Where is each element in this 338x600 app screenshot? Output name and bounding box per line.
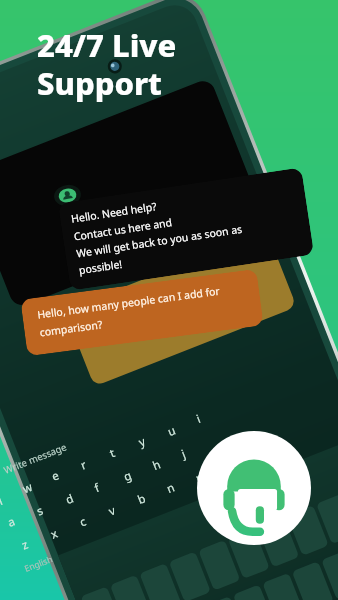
button[interactable]: c bbox=[77, 513, 89, 531]
staticText: y bbox=[136, 433, 148, 451]
button[interactable]: v bbox=[106, 502, 118, 520]
button[interactable]: English bbox=[23, 553, 54, 575]
button[interactable]: x bbox=[48, 525, 61, 543]
button[interactable]: b bbox=[135, 490, 149, 508]
button[interactable]: j bbox=[179, 446, 188, 462]
button[interactable]: Write message bbox=[2, 440, 69, 477]
button[interactable]: d bbox=[63, 490, 77, 508]
staticText: g bbox=[121, 467, 135, 485]
staticText: m bbox=[193, 467, 210, 486]
button[interactable]: Hello. Need help? Contact us here and We… bbox=[58, 167, 314, 291]
staticText: v bbox=[106, 502, 118, 520]
staticText: a bbox=[5, 513, 18, 531]
button[interactable]: t bbox=[107, 445, 118, 461]
staticText: Hello. Need help? Contact us here and We… bbox=[70, 187, 246, 277]
staticText: q bbox=[0, 490, 5, 508]
button[interactable]: Hello, how many people can I add for com… bbox=[20, 269, 264, 356]
staticText: Hello, how many people can I add for com… bbox=[36, 284, 223, 339]
button[interactable]: f bbox=[92, 480, 102, 496]
staticText: t bbox=[107, 445, 118, 461]
button[interactable]: n bbox=[164, 479, 178, 497]
staticText: i bbox=[194, 411, 203, 427]
staticText: j bbox=[179, 446, 188, 462]
button[interactable]: z bbox=[19, 536, 31, 554]
staticText: w bbox=[20, 479, 36, 497]
staticText: s bbox=[34, 502, 46, 520]
button[interactable]: r bbox=[78, 457, 89, 473]
button[interactable]: e bbox=[49, 467, 62, 485]
button[interactable]: m bbox=[193, 467, 210, 486]
button[interactable]: h bbox=[150, 456, 164, 474]
staticText: r bbox=[78, 457, 89, 473]
staticText: e bbox=[49, 467, 62, 485]
staticText: c bbox=[77, 513, 89, 531]
staticText: d bbox=[63, 490, 77, 508]
staticText: b bbox=[135, 490, 149, 508]
staticText: h bbox=[150, 456, 164, 474]
staticText: x bbox=[48, 525, 61, 543]
button[interactable]: Support agent avatar bbox=[52, 183, 83, 208]
button[interactable]: w bbox=[20, 479, 36, 497]
button[interactable]: i bbox=[194, 411, 203, 427]
staticText: z bbox=[19, 536, 31, 554]
staticText: n bbox=[164, 479, 178, 497]
button[interactable]: u bbox=[165, 422, 179, 440]
button[interactable]: s bbox=[34, 502, 46, 520]
button[interactable]: q bbox=[0, 490, 5, 508]
button[interactable]: y bbox=[136, 433, 148, 451]
staticText: 24/7 Live Support bbox=[37, 24, 177, 104]
staticText: u bbox=[165, 422, 179, 440]
button[interactable]: g bbox=[121, 467, 135, 485]
button[interactable]: a bbox=[5, 513, 18, 531]
staticText: English bbox=[23, 553, 54, 575]
button[interactable]: Contact live support bbox=[197, 431, 311, 545]
staticText: Write message bbox=[2, 440, 69, 477]
staticText: f bbox=[92, 480, 102, 496]
